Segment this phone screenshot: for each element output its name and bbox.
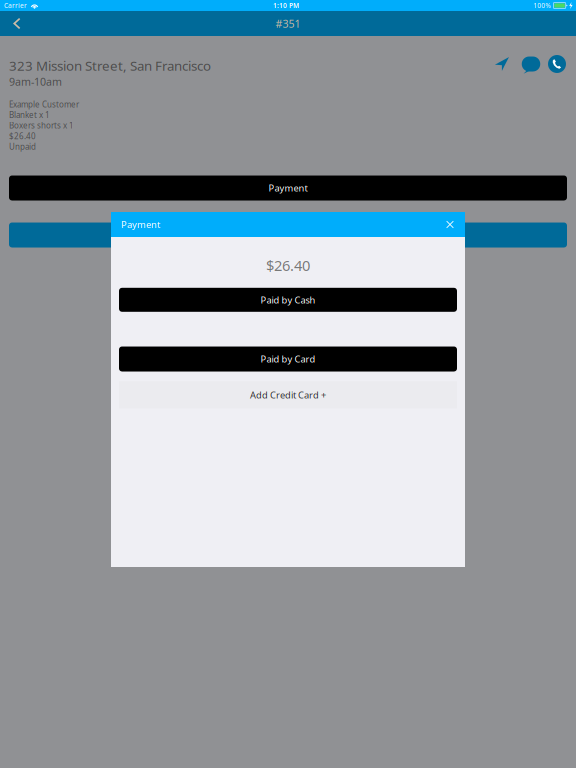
staticText: $26.40 <box>266 256 310 275</box>
staticText: Blanket x 1 <box>9 110 50 120</box>
staticText: Carrier <box>4 1 27 10</box>
staticText: Paid by Card <box>260 353 315 365</box>
staticText: Payment <box>121 218 160 231</box>
staticText: $26.40 <box>9 131 36 141</box>
staticText: Add Credit Card + <box>250 389 326 401</box>
staticText: 1:10 PM <box>273 1 299 10</box>
staticText: 9am-10am <box>9 74 62 89</box>
button[interactable]: Payment <box>9 175 567 200</box>
button[interactable]: Directions <box>491 53 513 75</box>
button[interactable]: Paid by Cash <box>119 288 457 312</box>
button[interactable]: Back <box>0 11 34 36</box>
staticText: #351 <box>275 16 300 31</box>
staticText: 323 Mission Street, San Francisco <box>9 57 211 74</box>
staticText: 100% <box>533 1 551 10</box>
button[interactable]: Paid by Card <box>119 346 457 371</box>
staticText: Unpaid <box>9 141 36 152</box>
staticText: Paid by Cash <box>260 294 315 306</box>
button[interactable]: Add Credit Card + <box>119 381 457 408</box>
staticText: Boxers shorts x 1 <box>9 120 74 131</box>
staticText: Example Customer <box>9 99 79 110</box>
button[interactable]: Message <box>520 53 541 75</box>
staticText: Payment <box>268 182 307 194</box>
button[interactable]: Close <box>441 215 459 233</box>
button[interactable]: Complete job <box>9 222 567 247</box>
button[interactable]: Call <box>546 53 568 75</box>
